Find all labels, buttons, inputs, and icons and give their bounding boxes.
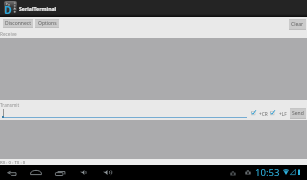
staticText: D xyxy=(4,3,12,14)
staticText: RX : 0 : TX : 0 xyxy=(0,159,26,165)
staticText: Send xyxy=(292,110,304,117)
staticText: Options xyxy=(38,20,57,27)
button[interactable]: Disconnect xyxy=(3,19,33,28)
button[interactable]: +CR xyxy=(251,110,256,115)
button[interactable]: +LF xyxy=(270,110,275,115)
staticText: Clear xyxy=(291,21,304,28)
button[interactable]: Volume down xyxy=(77,167,90,178)
button[interactable]: Options xyxy=(35,19,59,28)
button[interactable]: Volume up xyxy=(100,167,115,178)
button[interactable]: Back xyxy=(4,168,20,179)
button[interactable]: Home xyxy=(27,167,45,178)
button[interactable]: +LF xyxy=(279,111,287,118)
button[interactable]: Recents xyxy=(52,167,69,179)
staticText: 10:53 xyxy=(255,166,280,179)
button[interactable]: +CR xyxy=(259,111,268,118)
button[interactable]: More options xyxy=(292,0,307,17)
button[interactable]: Clear xyxy=(289,19,306,30)
button[interactable]: Send xyxy=(290,108,306,119)
staticText: Receive xyxy=(0,31,17,37)
staticText: SerialTerminal xyxy=(19,5,57,12)
staticText: D xyxy=(4,3,12,14)
staticText: Transmit xyxy=(0,102,20,108)
staticText: Disconnect xyxy=(5,20,31,27)
